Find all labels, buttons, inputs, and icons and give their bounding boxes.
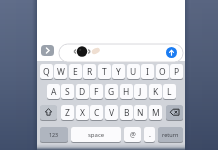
staticText: T — [102, 66, 107, 78]
staticText: E — [73, 66, 78, 78]
button[interactable]: @ — [124, 127, 141, 142]
staticText: A — [51, 86, 57, 98]
staticText: F — [94, 86, 99, 98]
button[interactable] — [41, 45, 54, 56]
button[interactable]: O — [156, 64, 169, 79]
staticText: . — [149, 130, 151, 140]
button[interactable]: Y — [112, 64, 125, 79]
staticText: B — [124, 107, 130, 119]
button[interactable]: T — [98, 64, 111, 79]
staticText: D — [79, 86, 86, 98]
staticText: W — [57, 66, 65, 78]
button[interactable]: B — [120, 105, 133, 120]
button[interactable] — [40, 105, 57, 120]
staticText: C — [94, 107, 100, 119]
button[interactable] — [166, 105, 183, 120]
button[interactable]: R — [83, 64, 96, 79]
button[interactable]: S — [61, 84, 74, 99]
staticText: M — [152, 107, 160, 119]
button[interactable]: X — [76, 105, 89, 120]
button[interactable]: J — [134, 84, 147, 99]
staticText: I — [146, 66, 149, 78]
button[interactable]: D — [76, 84, 89, 99]
button[interactable]: E — [69, 64, 82, 79]
button[interactable]: P — [170, 64, 183, 79]
staticText: S — [65, 86, 70, 98]
staticText: L — [167, 86, 172, 98]
button[interactable]: U — [127, 64, 140, 79]
button[interactable]: Z — [61, 105, 74, 120]
staticText: N — [137, 107, 144, 119]
button[interactable]: V — [105, 105, 118, 120]
staticText: space — [88, 131, 105, 139]
staticText: return — [162, 131, 179, 138]
button[interactable]: return — [158, 127, 183, 142]
staticText: @ — [130, 130, 136, 139]
staticText: Y — [116, 66, 121, 78]
button[interactable]: I — [141, 64, 154, 79]
button[interactable]: Q — [40, 64, 53, 79]
button[interactable]: N — [134, 105, 147, 120]
button[interactable]: M — [149, 105, 162, 120]
staticText: X — [80, 107, 85, 119]
staticText: O — [159, 66, 166, 78]
staticText: U — [130, 66, 137, 78]
staticText: G — [108, 86, 115, 98]
staticText: P — [174, 66, 180, 78]
button[interactable]: H — [120, 84, 133, 99]
button[interactable]: C — [90, 105, 103, 120]
button[interactable]: L — [163, 84, 176, 99]
button[interactable] — [59, 44, 183, 62]
staticText: K — [153, 86, 159, 98]
button[interactable]: F — [90, 84, 103, 99]
staticText: 123 — [49, 131, 59, 138]
button[interactable]: . — [144, 127, 155, 142]
staticText: H — [123, 86, 130, 98]
staticText: V — [109, 107, 115, 119]
button[interactable]: 123 — [40, 127, 68, 142]
staticText: Q — [43, 66, 50, 78]
button[interactable]: W — [54, 64, 67, 79]
button[interactable]: G — [105, 84, 118, 99]
staticText: J — [139, 86, 142, 98]
button[interactable]: A — [47, 84, 60, 99]
button[interactable] — [166, 47, 177, 58]
button[interactable]: space — [71, 127, 121, 142]
staticText: Z — [65, 107, 70, 119]
button[interactable]: K — [149, 84, 162, 99]
staticText: R — [87, 66, 93, 78]
